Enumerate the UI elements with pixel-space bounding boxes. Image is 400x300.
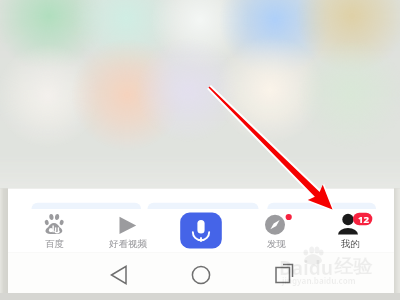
button[interactable]: 好看视频 bbox=[91, 189, 165, 253]
button[interactable]: 语音搜索 bbox=[165, 189, 239, 253]
staticText: Baidu bbox=[279, 255, 334, 281]
staticText: 好看视频 bbox=[109, 238, 147, 250]
button[interactable]: 最近任务 bbox=[238, 253, 318, 293]
button[interactable]: 百度 bbox=[17, 189, 91, 253]
button[interactable]: 我的 bbox=[313, 189, 387, 253]
button[interactable]: 返回 bbox=[78, 253, 158, 293]
button[interactable]: 发现 bbox=[239, 189, 313, 253]
button[interactable]: 主页 bbox=[158, 253, 238, 293]
staticText: 12 bbox=[358, 213, 369, 224]
staticText: jingyan.baidu.com bbox=[282, 275, 356, 286]
staticText: 发现 bbox=[267, 238, 286, 250]
staticText: 经验 bbox=[334, 255, 372, 279]
staticText: 我的 bbox=[341, 238, 360, 250]
staticText: 百度 bbox=[45, 238, 64, 250]
